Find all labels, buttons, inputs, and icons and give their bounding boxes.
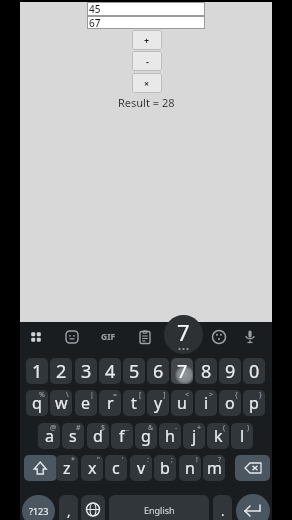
staticText: + (197, 423, 202, 433)
staticText: ! (196, 455, 198, 465)
button[interactable]: @ (38, 423, 60, 449)
staticText: : (147, 455, 149, 465)
button[interactable]: } (243, 390, 265, 416)
button[interactable]: \ (50, 390, 72, 416)
staticText: 7 (177, 317, 190, 347)
button[interactable] (209, 327, 229, 347)
button[interactable]: ; (154, 455, 176, 481)
staticText: ) (247, 423, 250, 433)
staticText: [ (139, 390, 142, 400)
button[interactable]: 0 (243, 358, 265, 384)
button[interactable]: " (81, 455, 103, 481)
button[interactable]: - (159, 423, 181, 449)
button[interactable] (81, 495, 105, 520)
button[interactable]: # (62, 423, 84, 449)
button[interactable]: 8 (195, 358, 217, 384)
button[interactable]: 4 (99, 358, 121, 384)
staticText: 8 (201, 359, 212, 384)
button[interactable]: ' (105, 455, 127, 481)
staticText: ( (223, 423, 226, 433)
button[interactable]: _ (111, 423, 133, 449)
button[interactable]: : (130, 455, 152, 481)
button[interactable]: 5 (123, 358, 145, 384)
button[interactable]: 3 (75, 358, 97, 384)
button[interactable]: + (132, 30, 162, 50)
button[interactable]: ! (179, 455, 201, 481)
staticText: + (144, 34, 150, 46)
button[interactable]: 9 (219, 358, 241, 384)
staticText: f (119, 425, 125, 447)
staticText: e (81, 392, 91, 414)
button[interactable] (240, 327, 260, 347)
button[interactable] (236, 494, 270, 520)
button[interactable]: GIF (96, 327, 120, 347)
button[interactable]: * (56, 455, 78, 481)
button[interactable]: ] (147, 390, 169, 416)
staticText: 9 (225, 359, 236, 384)
button[interactable]: ?123 (22, 495, 55, 520)
staticText: b (160, 457, 170, 479)
staticText: ; (171, 455, 173, 465)
button[interactable]: English (109, 495, 209, 520)
button[interactable]: ( (207, 423, 229, 449)
button[interactable] (24, 455, 57, 481)
button[interactable]: - (132, 51, 162, 71)
staticText: s (69, 425, 77, 447)
staticText: . (221, 502, 225, 520)
staticText: \ (66, 390, 69, 400)
button[interactable]: < (171, 390, 193, 416)
staticText: i (204, 392, 209, 414)
button[interactable]: 7 (164, 315, 203, 354)
staticText: > (209, 390, 214, 400)
staticText: z (63, 457, 71, 479)
staticText: | (90, 390, 94, 400)
button[interactable]: > (195, 390, 217, 416)
button[interactable]: { (219, 390, 241, 416)
staticText: t (131, 392, 137, 414)
staticText: 7 (177, 359, 188, 384)
button[interactable]: . (213, 495, 232, 520)
staticText: % (39, 390, 45, 400)
button[interactable]: [ (123, 390, 145, 416)
button[interactable]: 67 (87, 16, 205, 29)
staticText: 6 (153, 359, 164, 384)
button[interactable]: 2 (50, 358, 72, 384)
staticText: × (144, 77, 150, 89)
staticText: w (55, 392, 68, 414)
button[interactable] (135, 327, 155, 347)
staticText: m (207, 457, 222, 479)
staticText: k (214, 425, 223, 447)
button[interactable]: $ (87, 423, 109, 449)
button[interactable]: ) (231, 423, 253, 449)
button[interactable] (62, 327, 82, 347)
button[interactable]: | (75, 390, 97, 416)
staticText: _ (126, 423, 130, 433)
button[interactable]: × (132, 73, 162, 93)
staticText: } (259, 390, 262, 400)
staticText: r (107, 392, 114, 414)
staticText: 67 (89, 16, 101, 29)
button[interactable]: % (26, 390, 48, 416)
staticText: v (137, 457, 146, 479)
button[interactable]: & (135, 423, 157, 449)
staticText: - (146, 55, 149, 67)
button[interactable]: 6 (147, 358, 169, 384)
button[interactable]: , (59, 495, 78, 520)
button[interactable]: + (183, 423, 205, 449)
staticText: n (185, 457, 195, 479)
staticText: u (177, 392, 187, 414)
button[interactable] (235, 455, 270, 481)
button[interactable]: 1 (26, 358, 48, 384)
staticText: < (185, 390, 190, 400)
staticText: # (76, 423, 81, 433)
button[interactable]: = (99, 390, 121, 416)
staticText: 0 (249, 359, 260, 384)
button[interactable]: 7 (171, 358, 193, 384)
staticText: $ (101, 423, 106, 433)
button[interactable] (26, 327, 46, 347)
staticText: ] (163, 390, 166, 400)
button[interactable]: ? (203, 455, 225, 481)
staticText: - (175, 423, 178, 433)
staticText: ' (122, 455, 124, 465)
button[interactable]: 45 (87, 2, 205, 16)
